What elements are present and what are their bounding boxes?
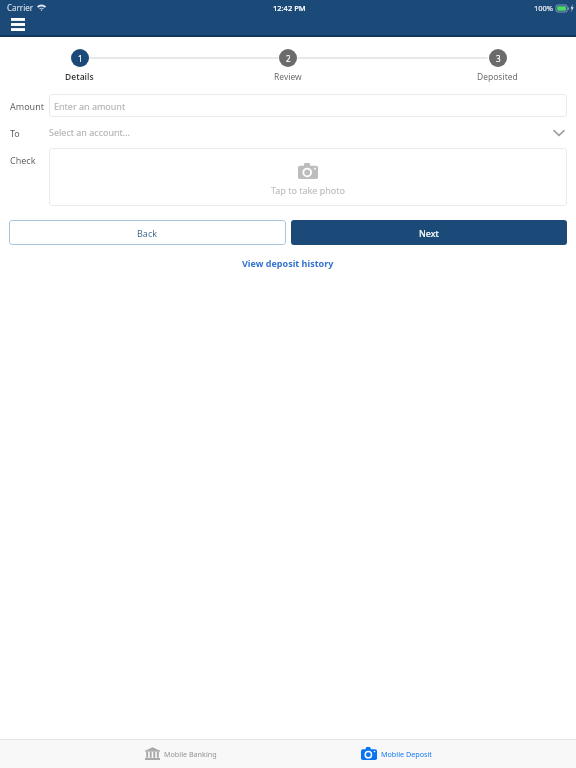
staticText: 3: [496, 53, 501, 64]
staticText: Carrier: [7, 2, 34, 13]
button[interactable]: To: [0, 122, 576, 144]
staticText: Mobile Banking: [164, 749, 217, 759]
staticText: Select an account...: [49, 126, 131, 138]
staticText: Details: [65, 71, 94, 83]
staticText: Check: [10, 154, 36, 166]
staticText: Amount: [10, 100, 44, 112]
staticText: Review: [274, 71, 302, 83]
staticText: Deposited: [477, 71, 518, 83]
staticText: 12:42 PM: [273, 3, 306, 13]
staticText: Tap to take photo: [271, 184, 345, 196]
staticText: Enter an amount: [54, 100, 126, 112]
button[interactable]: Next: [291, 220, 567, 245]
button[interactable]: Open navigation menu: [3, 14, 33, 35]
button[interactable]: Mobile Deposit: [361, 739, 576, 768]
button[interactable]: Mobile Banking: [145, 739, 361, 768]
button[interactable]: Tap to take photo of check: [49, 148, 567, 206]
staticText: 2: [286, 53, 291, 64]
button[interactable]: Enter an amount: [49, 94, 567, 117]
button[interactable]: 2: [244, 49, 332, 83]
button[interactable]: 1: [35, 49, 123, 83]
staticText: 1: [78, 53, 83, 64]
button[interactable]: 3: [453, 49, 541, 83]
staticText: Mobile Deposit: [381, 749, 432, 759]
button[interactable]: View deposit history: [234, 254, 342, 272]
button[interactable]: Back: [9, 220, 286, 245]
staticText: 100%: [534, 3, 554, 13]
staticText: Back: [137, 227, 158, 239]
staticText: To: [10, 127, 20, 139]
staticText: View deposit history: [242, 257, 334, 269]
staticText: Next: [419, 227, 439, 239]
